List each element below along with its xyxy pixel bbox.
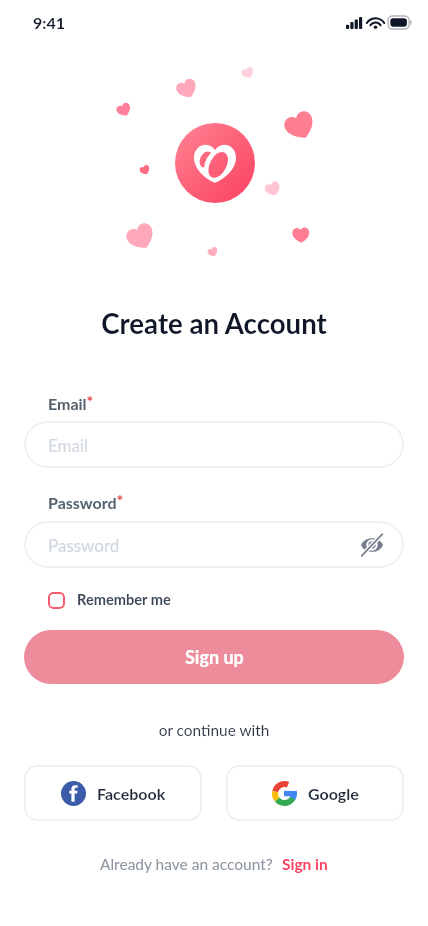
staticText: Email* <box>48 391 94 414</box>
staticText: Sign up <box>185 646 244 668</box>
staticText: Sign in <box>282 855 328 874</box>
staticText: Email <box>48 435 89 455</box>
staticText: Google <box>308 784 359 803</box>
staticText: Already have an account? <box>100 855 273 874</box>
staticText: or continue with <box>0 721 428 739</box>
staticText: Password* <box>48 490 124 513</box>
button[interactable]: Remember me <box>48 591 171 609</box>
button[interactable]: Sign up <box>24 630 404 684</box>
button[interactable]: Sign in <box>282 855 328 874</box>
button[interactable]: Google <box>226 765 404 821</box>
button[interactable]: Email <box>24 421 404 468</box>
staticText: Password <box>48 535 120 555</box>
staticText: Remember me <box>77 591 171 609</box>
button[interactable]: Password <box>24 521 404 568</box>
button[interactable]: Facebook <box>24 765 202 821</box>
staticText: Facebook <box>97 784 166 803</box>
staticText: 9:41 <box>33 13 65 32</box>
staticText: Create an Account <box>0 307 428 340</box>
button[interactable]: Show password <box>358 531 386 559</box>
